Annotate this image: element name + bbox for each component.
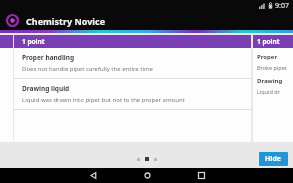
staticText: Liquid was drawn into pipet but not to t… bbox=[22, 96, 185, 104]
staticText: 1 point bbox=[257, 37, 280, 46]
button[interactable]: App logo bbox=[6, 14, 19, 27]
staticText: Drawing liquid bbox=[22, 84, 70, 93]
staticText: Liquid dr bbox=[257, 88, 280, 95]
button[interactable]: Home bbox=[132, 168, 162, 183]
button[interactable]: Recent apps bbox=[186, 168, 216, 183]
button[interactable]: Drawing liquid bbox=[14, 79, 251, 109]
button[interactable]: Next page bbox=[253, 35, 293, 142]
staticText: Hide bbox=[265, 154, 282, 164]
button[interactable]: Hide bbox=[259, 152, 288, 166]
button[interactable]: Back bbox=[78, 168, 108, 183]
button[interactable]: 1 point bbox=[14, 35, 251, 142]
staticText: Broke pipet bbox=[257, 64, 287, 71]
button[interactable]: Previous page bbox=[0, 35, 13, 142]
staticText: Drawing liquid bbox=[257, 77, 293, 85]
staticText: Proper handling bbox=[257, 53, 293, 61]
staticText: Does not handle pipet carefully the enti… bbox=[22, 65, 154, 73]
button[interactable]: Proper handling bbox=[14, 48, 251, 78]
staticText: Chemistry Novice bbox=[26, 15, 106, 27]
staticText: Proper handling bbox=[22, 53, 75, 62]
staticText: 1 point bbox=[22, 37, 45, 46]
staticText: 9:07 bbox=[275, 1, 289, 11]
